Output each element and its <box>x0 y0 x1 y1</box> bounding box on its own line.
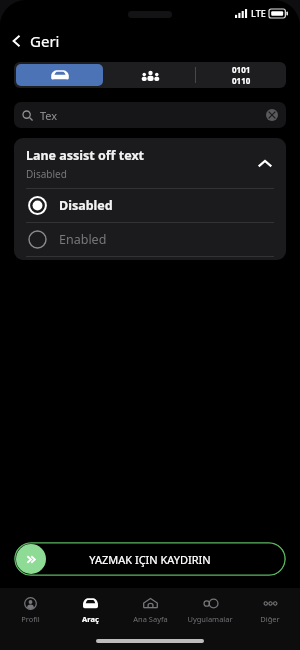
button[interactable]: Araç <box>16 64 103 86</box>
button[interactable]: Diğer <box>240 588 300 632</box>
staticText: Diğer <box>260 614 280 624</box>
button[interactable]: Uygulamalar <box>180 588 240 632</box>
staticText: Profil <box>21 614 40 624</box>
button[interactable]: Ana Sayfa <box>120 588 180 632</box>
staticText: Disabled <box>59 197 113 214</box>
button[interactable]: Tex <box>14 102 286 128</box>
button[interactable]: Disabled <box>14 189 286 222</box>
staticText: Tex <box>40 108 58 123</box>
button[interactable]: Enabled <box>14 223 286 256</box>
staticText: Uygulamalar <box>187 614 233 624</box>
button[interactable]: Kişiler <box>105 62 195 88</box>
staticText: Disabled <box>26 167 67 181</box>
button[interactable]: Profil <box>0 588 60 632</box>
staticText: LTE <box>251 7 266 19</box>
button[interactable]: Geri <box>0 26 300 56</box>
button[interactable]: Veri <box>196 62 286 88</box>
staticText: YAZMAK IÇIN KAYDIRIN <box>89 552 211 567</box>
button[interactable]: Yazmak için kaydırın <box>14 542 286 576</box>
staticText: Araç <box>82 614 99 624</box>
button[interactable]: Temizle <box>266 109 278 121</box>
staticText: Ana Sayfa <box>133 614 168 624</box>
button[interactable]: Lane assist off text <box>14 138 286 188</box>
button[interactable]: Araç <box>60 588 120 632</box>
staticText: Enabled <box>59 231 107 248</box>
button[interactable]: Daralt <box>256 155 274 173</box>
staticText: Lane assist off text <box>26 147 145 164</box>
staticText: 0110 <box>232 75 251 86</box>
staticText: Geri <box>30 31 60 51</box>
staticText: 0101 <box>232 64 251 75</box>
